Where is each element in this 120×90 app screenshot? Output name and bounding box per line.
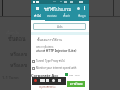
- button[interactable]: ทั่วไป: [31, 12, 45, 21]
- button[interactable]: ดาวน์โหลด: [67, 81, 85, 87]
- staticText: Corporate Acc: [31, 73, 59, 78]
- button[interactable]: Settings: [52, 79, 55, 82]
- staticText: หยุดบันทึกวิดีโอ: [39, 85, 56, 89]
- staticText: Ads: [57, 25, 63, 29]
- button[interactable]: Back: [34, 5, 40, 11]
- staticText: ขั้นตอน: [8, 35, 26, 44]
- staticText: ข้อมูล: [78, 14, 86, 19]
- staticText: หรือเลข: [10, 50, 28, 58]
- button[interactable]: Record: [34, 79, 37, 82]
- button[interactable]: Info: [75, 5, 81, 11]
- button[interactable]: More options: [81, 5, 87, 11]
- staticText: Monitor your internet speed with: [36, 66, 77, 70]
- staticText: Tunnel Type Proxy ทั่วไป: [36, 59, 65, 63]
- staticText: Ads · VPN: [69, 73, 80, 76]
- button[interactable]: Monitor your internet speed with: [32, 66, 77, 70]
- button[interactable]: Ads: [33, 23, 86, 30]
- staticText: ดาวน์โหลด: [70, 82, 83, 86]
- staticText: ขั้นตอนการใช้งาน: [37, 37, 63, 42]
- staticText: ตั้งค่า: [63, 14, 71, 19]
- button[interactable]: ข้อมูล: [74, 12, 89, 21]
- button[interactable]: ตั้งค่า: [59, 12, 74, 21]
- button[interactable]: ทดสอบ: [45, 12, 59, 21]
- staticText: หรือเลข: [10, 61, 28, 69]
- staticText: ทั่วไป: [34, 14, 42, 19]
- staticText: หลังจากนั้นให้กด: [36, 45, 54, 49]
- button[interactable]: Tunnel Type Proxy ทั่วไป: [32, 59, 65, 63]
- staticText: เลือกที่ HTTP Injector (Lite): [36, 48, 77, 53]
- staticText: ทดสอบ: [47, 14, 57, 19]
- staticText: วิธีใช้โปรแกรม: [44, 6, 72, 13]
- staticText: 1.1 Tunn: [2, 75, 19, 80]
